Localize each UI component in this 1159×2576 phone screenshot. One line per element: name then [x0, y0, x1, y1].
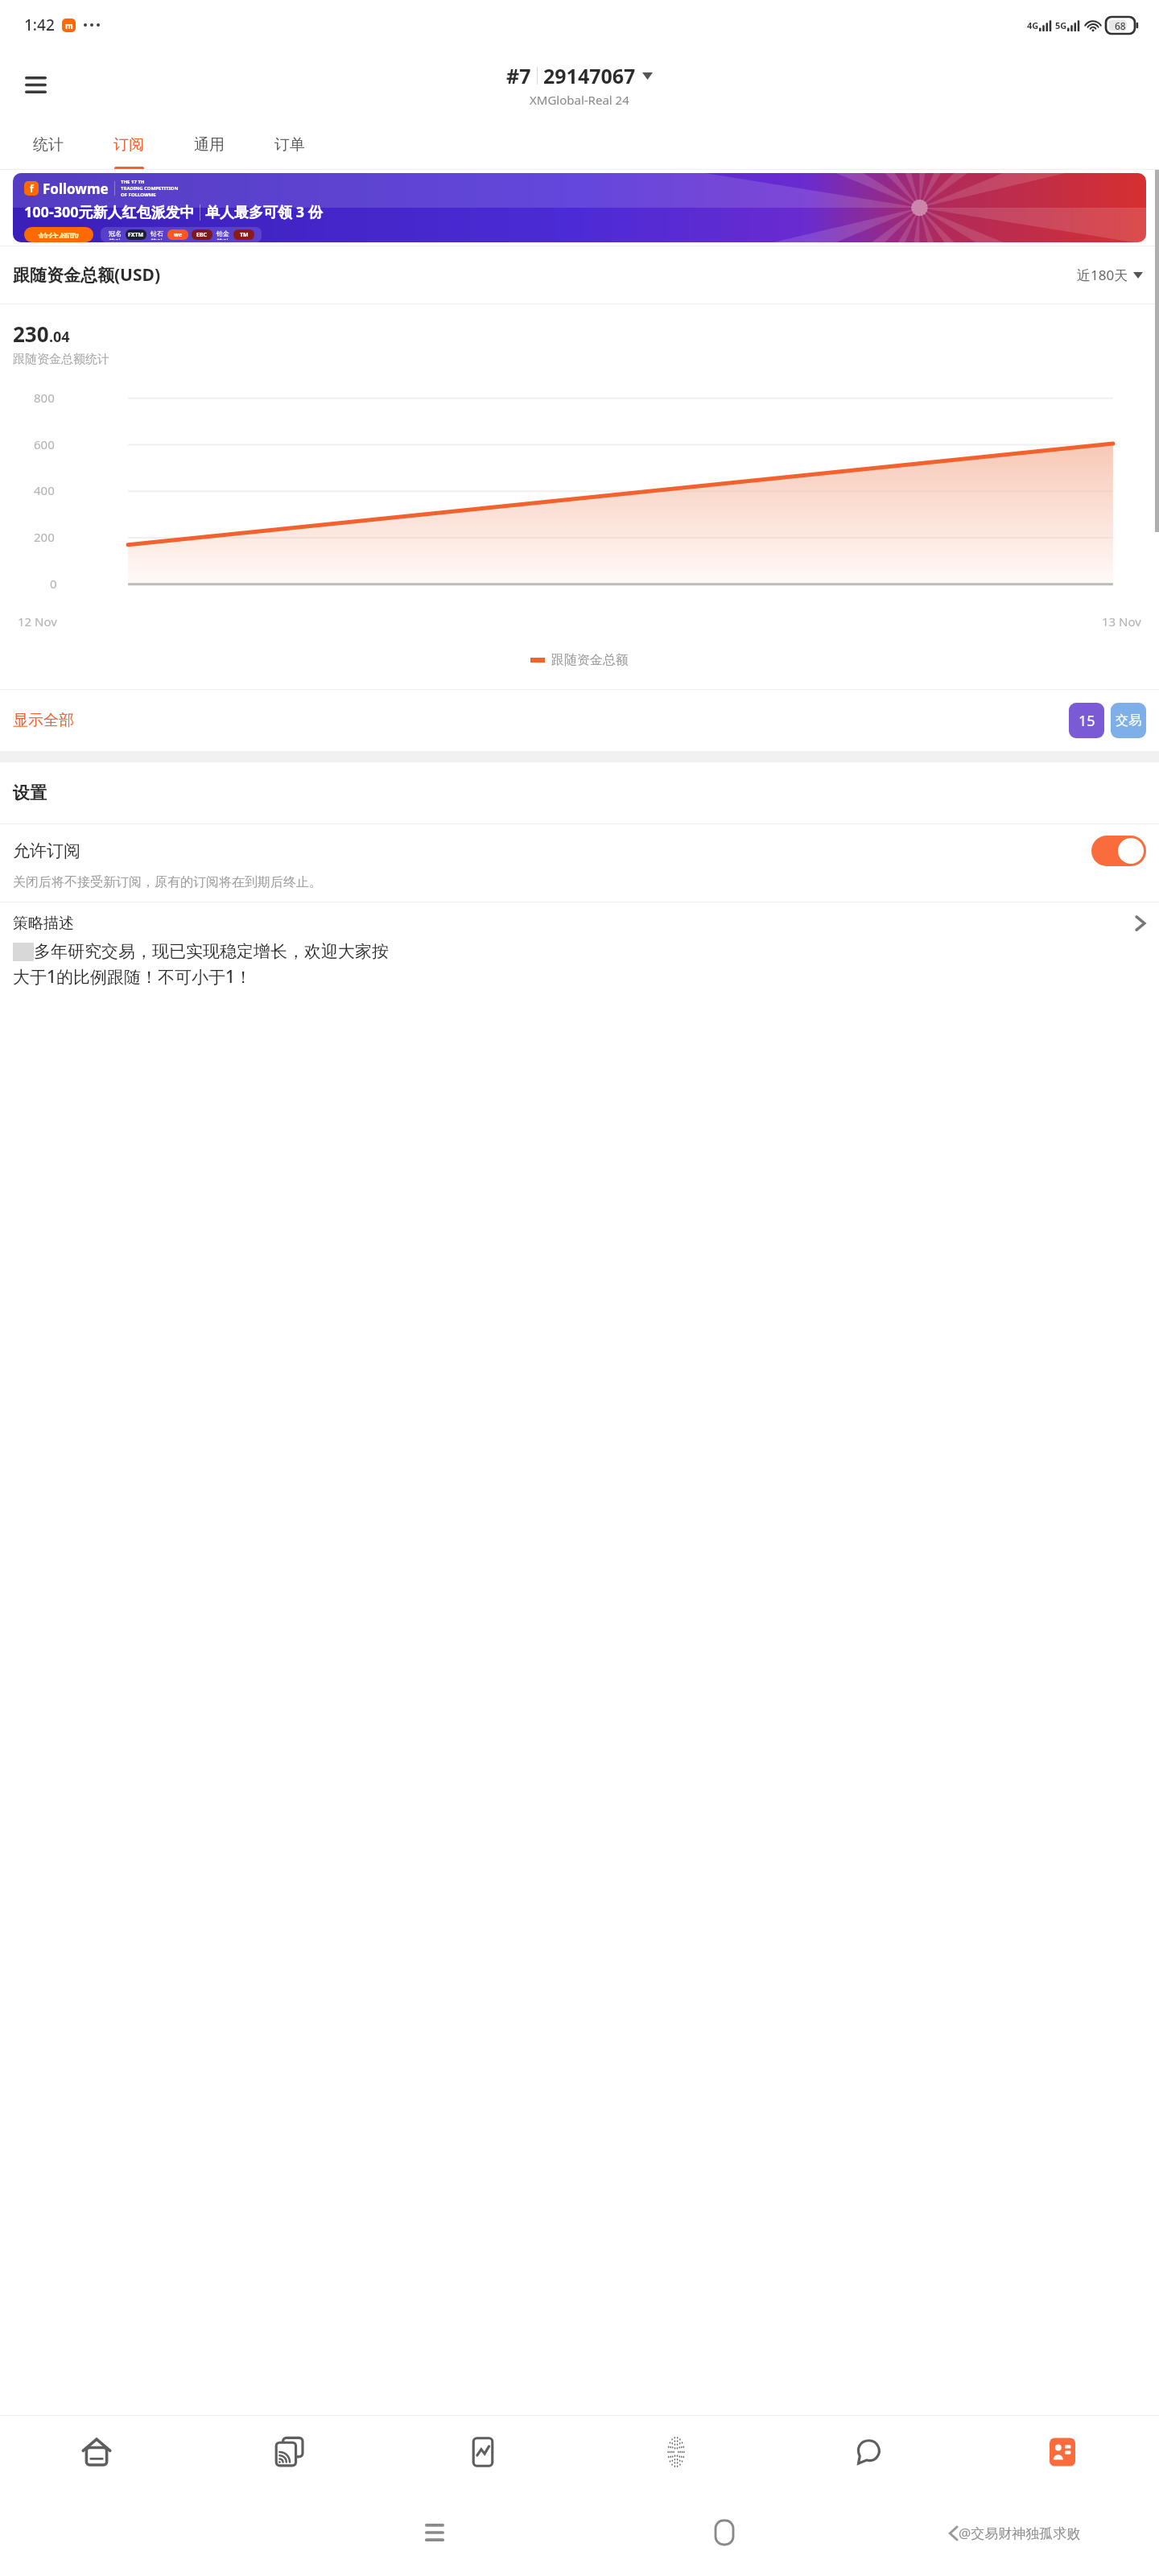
staticText: 铂金	[217, 229, 229, 237]
button[interactable]: 近180天	[1074, 262, 1146, 287]
button[interactable]: #7	[506, 62, 653, 108]
staticText: 15	[1079, 711, 1095, 731]
staticText: 通用	[194, 135, 225, 155]
staticText: 设置	[13, 782, 47, 803]
staticText: 近180天	[1077, 266, 1128, 284]
staticText: TM	[240, 231, 249, 239]
staticText: 策略描述	[13, 914, 74, 933]
staticText: XMGlobal-Real 24	[530, 92, 629, 108]
button[interactable]: Broadcast	[193, 2415, 386, 2489]
button[interactable]: Profile	[966, 2415, 1159, 2489]
staticText: 大于1的比例跟随！不可小于1！	[13, 965, 253, 989]
staticText: 跟随资金总额	[551, 652, 629, 668]
staticText: 400	[34, 482, 55, 498]
button[interactable]: 通用	[169, 119, 250, 170]
button[interactable]: 策略描述	[0, 902, 1159, 997]
staticText: 钻石	[151, 229, 163, 237]
staticText: 多年研究交易，现已实现稳定增长，欢迎大家按	[34, 941, 389, 962]
staticText: 单人最多可领 3 份	[205, 202, 323, 222]
button[interactable]: 允许订阅	[0, 824, 1159, 902]
staticText: 68	[1115, 19, 1126, 32]
staticText: 统计	[33, 135, 64, 155]
staticText: EBC	[196, 231, 208, 239]
staticText: 4G	[1027, 19, 1039, 31]
staticText: 赞助	[151, 237, 163, 240]
staticText: f	[30, 182, 34, 195]
button[interactable]: Allow subscription toggle, on	[1091, 836, 1146, 866]
staticText: 关闭后将不接受新订阅，原有的订阅将在到期后终止。	[13, 874, 322, 890]
staticText: .04	[49, 327, 70, 347]
button[interactable]: f	[13, 173, 1146, 242]
staticText: #7	[506, 62, 531, 89]
staticText: 1:42	[24, 14, 55, 35]
button[interactable]: 前往领取	[38, 231, 80, 238]
button[interactable]: 订阅	[89, 119, 169, 170]
staticText: 跟随资金总额统计	[13, 352, 109, 367]
staticText: 冠名	[109, 229, 122, 237]
staticText: 赞助	[109, 237, 122, 240]
other: Recents	[425, 2524, 444, 2541]
staticText: Followme	[43, 180, 109, 198]
button[interactable]: Menu	[14, 64, 56, 105]
staticText: we	[174, 231, 183, 239]
staticText: 前往领取	[38, 231, 80, 238]
button[interactable]: Chart	[386, 2415, 579, 2489]
staticText: 13 Nov	[1102, 613, 1141, 630]
staticText: 29147067	[543, 62, 636, 89]
staticText: 200	[34, 529, 55, 545]
staticText: @交易财神独孤求败	[959, 2524, 1081, 2542]
other: Home	[716, 2520, 733, 2545]
staticText: 600	[34, 436, 55, 452]
staticText: 赞助	[217, 237, 229, 240]
button[interactable]: Home	[0, 2415, 193, 2489]
staticText: 订单	[274, 135, 305, 155]
button[interactable]: 订单	[250, 119, 330, 170]
staticText: 100-300元新人红包派发中	[24, 202, 195, 222]
staticText: 订阅	[113, 135, 144, 155]
staticText: TRADING COMPETITION	[121, 185, 179, 192]
staticText: 交易	[1116, 712, 1141, 729]
staticText: m	[65, 20, 73, 31]
staticText: OF FOLLOWME	[121, 192, 156, 198]
staticText: 跟随资金总额(USD)	[13, 263, 161, 287]
button[interactable]: 交易	[1111, 703, 1146, 738]
staticText: 230	[13, 320, 49, 348]
button[interactable]: 显示全部	[13, 706, 74, 735]
button[interactable]: 15	[1069, 703, 1104, 738]
staticText: 800	[34, 390, 55, 406]
button[interactable]: Discover	[579, 2415, 773, 2489]
staticText: 0	[50, 576, 57, 592]
staticText: FXTM	[128, 231, 144, 239]
staticText: 12 Nov	[18, 613, 57, 630]
staticText: 5G	[1055, 19, 1067, 31]
staticText: 显示全部	[13, 711, 74, 730]
staticText: 允许订阅	[13, 840, 80, 861]
button[interactable]: Messages	[773, 2415, 966, 2489]
other: More	[1135, 914, 1146, 933]
button[interactable]: 统计	[8, 119, 89, 170]
staticText: THE 17 TH	[121, 179, 145, 185]
